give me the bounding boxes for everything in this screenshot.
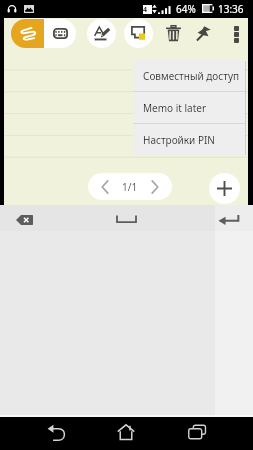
button[interactable]: Delete xyxy=(159,19,187,47)
button[interactable]: Text style xyxy=(87,19,116,48)
button[interactable]: Space xyxy=(117,215,136,223)
button[interactable]: Backspace xyxy=(16,215,33,225)
button[interactable]: More options xyxy=(222,19,250,47)
button[interactable]: Memo it later xyxy=(133,92,245,123)
staticText: Совместный доступ xyxy=(143,69,240,83)
button[interactable]: Совместный доступ xyxy=(133,60,245,91)
button[interactable]: Enter xyxy=(218,214,239,225)
button[interactable]: Previous page xyxy=(93,173,117,200)
staticText: 13:36 xyxy=(218,2,244,16)
button[interactable]: Keyboard xyxy=(44,19,76,48)
staticText: 4G xyxy=(143,5,152,14)
button[interactable]: Add page xyxy=(209,173,240,204)
button[interactable]: Previous page xyxy=(88,173,172,200)
button[interactable]: Insert object xyxy=(124,19,153,48)
staticText: Настройки PIN xyxy=(143,133,215,147)
staticText: Memo it later xyxy=(143,101,207,115)
button[interactable]: Home xyxy=(114,420,138,444)
button[interactable]: Настройки PIN xyxy=(133,124,245,155)
button[interactable]: Pin xyxy=(190,19,218,47)
button[interactable]: Next page xyxy=(143,173,167,200)
button[interactable]: Recents xyxy=(185,420,209,444)
button[interactable]: Back xyxy=(43,420,69,444)
button[interactable]: Handwriting xyxy=(11,19,44,48)
staticText: 1/1 xyxy=(122,180,138,194)
staticText: 64% xyxy=(176,2,196,16)
